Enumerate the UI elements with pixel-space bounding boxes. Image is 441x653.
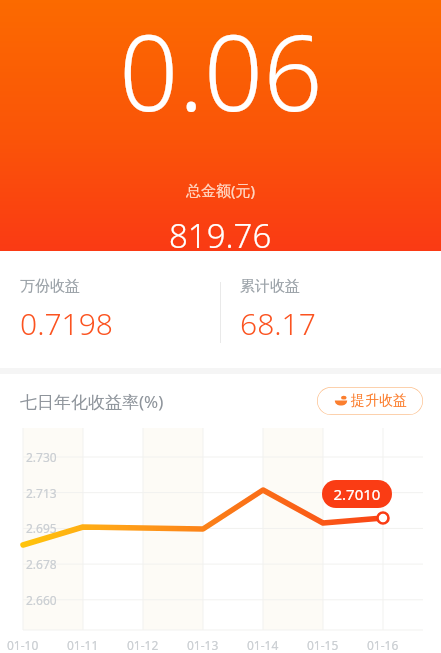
staticText: 万份收益 [20,277,80,296]
staticText: 七日年化收益率(%) [20,390,164,413]
button[interactable]: 万份收益 [0,251,220,374]
staticText: 总金额(元) [186,180,256,200]
staticText: 819.76 [169,213,272,251]
button[interactable]: 0.06 [0,0,441,251]
staticText: 0.06 [119,0,323,142]
staticText: 累计收益 [240,277,300,296]
staticText: 0.7198 [20,303,113,344]
staticText: 提升收益 [351,392,407,410]
staticText: 68.17 [240,303,316,344]
button[interactable]: Yu'E Bao [317,387,423,415]
button[interactable]: 累计收益 [220,251,441,374]
other: Yu'E Bao [334,394,348,408]
